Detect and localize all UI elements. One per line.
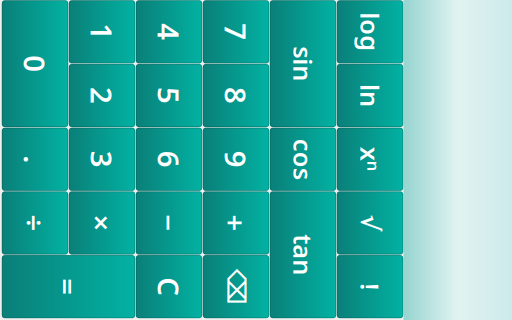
button[interactable]: − [287, 213, 351, 280]
staticText: + [310, 160, 327, 199]
button[interactable]: 4 [96, 213, 160, 280]
staticText: 1 [119, 294, 136, 320]
button[interactable]: 2 [160, 280, 223, 320]
staticText: √ [310, 32, 327, 60]
button[interactable]: Delete [351, 146, 414, 213]
staticText: 4 [119, 227, 136, 266]
button[interactable]: 3 [223, 280, 287, 320]
staticText: log [108, 29, 147, 63]
button[interactable]: ! [351, 12, 414, 79]
button[interactable]: 5 [160, 213, 223, 280]
button[interactable]: √ [287, 12, 351, 79]
button[interactable]: cos [223, 79, 287, 146]
staticText: 8 [183, 160, 200, 199]
button[interactable]: log [96, 12, 160, 79]
button[interactable]: = [351, 280, 414, 320]
button[interactable]: Clear [351, 213, 414, 280]
button[interactable]: 9 [223, 146, 287, 213]
staticText: ln [180, 29, 203, 63]
staticText: 9 [247, 160, 264, 199]
button[interactable]: tan [287, 79, 414, 146]
staticText: cos [235, 96, 276, 130]
staticText: 5 [183, 227, 200, 266]
button[interactable]: 6 [223, 213, 287, 280]
staticText: 6 [247, 227, 264, 266]
staticText: 3 [247, 294, 264, 320]
button[interactable]: 8 [160, 146, 223, 213]
staticText: 2 [183, 294, 200, 320]
staticText: 7 [119, 160, 136, 199]
staticText: xⁿ [243, 29, 268, 63]
button[interactable]: 1 [96, 280, 160, 320]
button[interactable]: xⁿ [223, 12, 287, 79]
staticText: sin [142, 96, 177, 130]
staticText: − [310, 227, 327, 266]
button[interactable]: sin [96, 79, 223, 146]
button[interactable]: ln [160, 12, 223, 79]
staticText: C [373, 227, 392, 266]
staticText: tan [330, 96, 371, 130]
staticText: ⌫ [365, 166, 401, 194]
button[interactable]: 7 [96, 146, 160, 213]
staticText: × [310, 294, 327, 320]
button[interactable]: × [287, 280, 351, 320]
button[interactable]: + [287, 146, 351, 213]
